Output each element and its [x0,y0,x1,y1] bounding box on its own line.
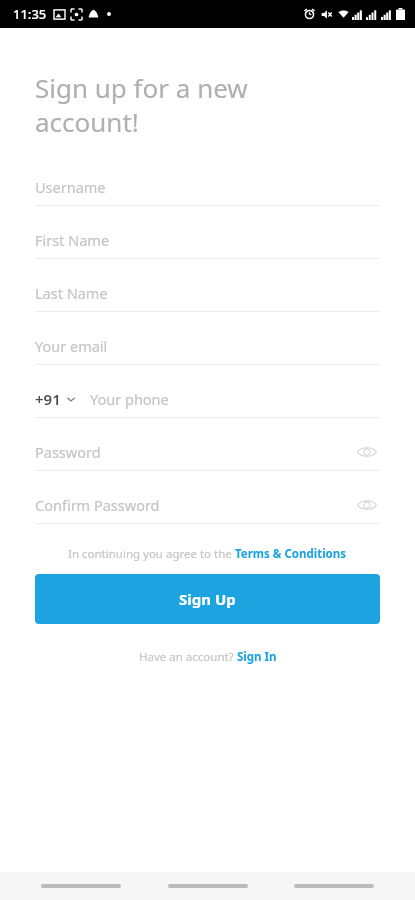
staticText: Terms & Conditions [235,546,347,562]
staticText: First Name [35,230,380,250]
staticText: Sign In [237,649,277,665]
button[interactable]: Toggle password visibility [354,439,380,465]
button[interactable]: Recents [36,872,126,900]
staticText: +91 [35,389,61,409]
staticText: Your email [35,336,380,356]
button[interactable]: Password [35,434,380,471]
button[interactable]: Last Name [35,275,380,312]
button[interactable]: Sign Up [35,574,380,624]
staticText: Username [35,177,380,197]
button[interactable]: Back [289,872,379,900]
staticText: Have an account? [139,649,237,665]
staticText: Sign Up [179,589,236,609]
button[interactable]: +91 [35,381,380,418]
button[interactable]: Sign In [237,649,277,665]
staticText: Confirm Password [35,495,354,515]
button[interactable]: Terms & Conditions [235,546,347,562]
staticText: Your phone [90,389,380,409]
staticText: Password [35,442,354,462]
button[interactable]: Home [163,872,253,900]
button[interactable]: Confirm Password [35,487,380,524]
button[interactable]: First Name [35,222,380,259]
staticText: Sign up for a new account! [35,70,248,139]
staticText: Last Name [35,283,380,303]
button[interactable]: Your email [35,328,380,365]
staticText: 11:35 [13,5,47,23]
button[interactable]: Toggle password visibility [354,492,380,518]
button[interactable]: Username [35,169,380,206]
staticText: In continuing you agree to the [68,546,235,562]
